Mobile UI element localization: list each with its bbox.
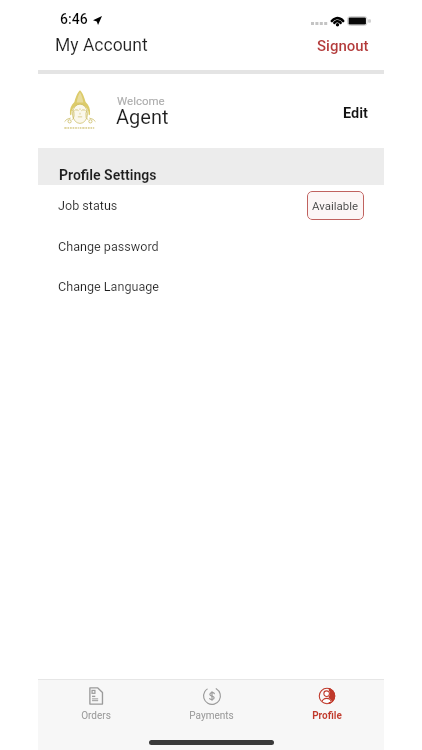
button[interactable]: Change Language — [38, 266, 384, 306]
staticText: My Account — [55, 35, 148, 56]
staticText: Welcome — [117, 94, 165, 107]
button[interactable]: Change password — [38, 226, 384, 266]
staticText: Profile Settings — [59, 167, 157, 183]
staticText: Signout — [317, 37, 369, 55]
staticText: Job status — [58, 198, 118, 213]
staticText: Orders — [81, 710, 111, 722]
button[interactable]: Available — [307, 191, 364, 220]
button[interactable]: Signout — [311, 31, 375, 61]
button[interactable]: Orders — [38, 687, 154, 722]
staticText: 6:46 — [60, 11, 88, 27]
staticText: Change password — [58, 239, 159, 254]
button[interactable]: Job status — [38, 185, 384, 225]
staticText: Payments — [189, 710, 234, 722]
button[interactable]: Edit — [337, 99, 374, 128]
staticText: Change Language — [58, 279, 160, 294]
staticText: Profile — [312, 710, 342, 722]
button[interactable]: Payments — [154, 687, 269, 722]
staticText: Agent — [116, 105, 169, 128]
button[interactable]: Profile — [269, 687, 384, 722]
staticText: Available — [312, 199, 359, 212]
staticText: Edit — [343, 105, 368, 122]
